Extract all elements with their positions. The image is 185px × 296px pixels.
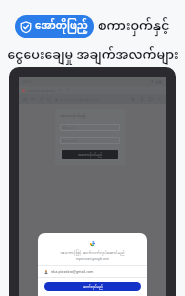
staticText: အော်တိုဖြည့်	[35, 16, 88, 38]
staticText: အကောင့်ဝင်ရန်	[60, 113, 86, 120]
staticText: ငွေပေးချေမှု အချက်အလက်များ	[7, 42, 179, 69]
staticText: nba.plxxdxtx@gmail.com	[51, 269, 94, 274]
staticText: စကားဝှက်နှင့်	[98, 13, 170, 40]
staticText: စကားဝှက်	[62, 138, 77, 144]
staticText: အီးမေးလ်	[62, 125, 76, 131]
button[interactable]: nba.plxxdxtx@gmail.com	[38, 266, 147, 277]
staticText: myaccount.google.com	[76, 257, 109, 261]
button[interactable]: အော်တိုဖြည့်	[15, 15, 94, 38]
staticText: အကောင့်ဖြင့် ဆက်လက်လုပ်ဆောင်မည်	[60, 249, 125, 256]
staticText: ဆက်လုပ်မည်	[83, 284, 103, 290]
button[interactable]: ဆက်လုပ်မည်	[44, 282, 141, 291]
staticText: အကောင့်ဝင်မည်	[78, 152, 103, 158]
button[interactable]: အကောင့်ဝင်မည်	[62, 150, 118, 159]
